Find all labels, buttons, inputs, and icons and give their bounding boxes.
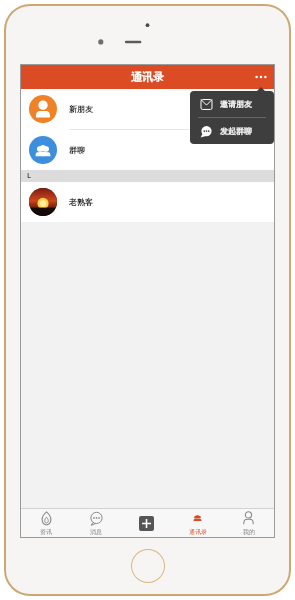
button[interactable]: 邀请朋友 bbox=[190, 91, 274, 117]
button[interactable]: 群聊 bbox=[21, 130, 274, 170]
staticText: 邀请朋友 bbox=[220, 99, 252, 109]
staticText: L bbox=[27, 171, 31, 181]
button[interactable]: 发起群聊 bbox=[190, 118, 274, 144]
staticText: 老熟客 bbox=[69, 197, 93, 207]
button[interactable]: Home bbox=[132, 550, 164, 582]
staticText: 通讯录 bbox=[189, 528, 207, 536]
button[interactable]: 老熟客 bbox=[21, 182, 274, 222]
button[interactable]: 新朋友 bbox=[21, 89, 274, 130]
button[interactable]: 资讯 bbox=[21, 509, 71, 537]
staticText: 新朋友 bbox=[69, 104, 93, 114]
staticText: 消息 bbox=[90, 528, 102, 536]
button[interactable]: 通讯录 bbox=[172, 509, 223, 537]
button[interactable]: More options bbox=[248, 65, 274, 89]
staticText: 资讯 bbox=[40, 528, 52, 536]
staticText: 群聊 bbox=[69, 145, 85, 155]
button[interactable]: Add bbox=[121, 509, 172, 537]
staticText: 我的 bbox=[243, 528, 255, 536]
button[interactable]: 我的 bbox=[223, 509, 274, 537]
button[interactable]: 消息 bbox=[71, 509, 121, 537]
staticText: 通讯录 bbox=[131, 70, 164, 84]
staticText: 发起群聊 bbox=[220, 126, 252, 136]
